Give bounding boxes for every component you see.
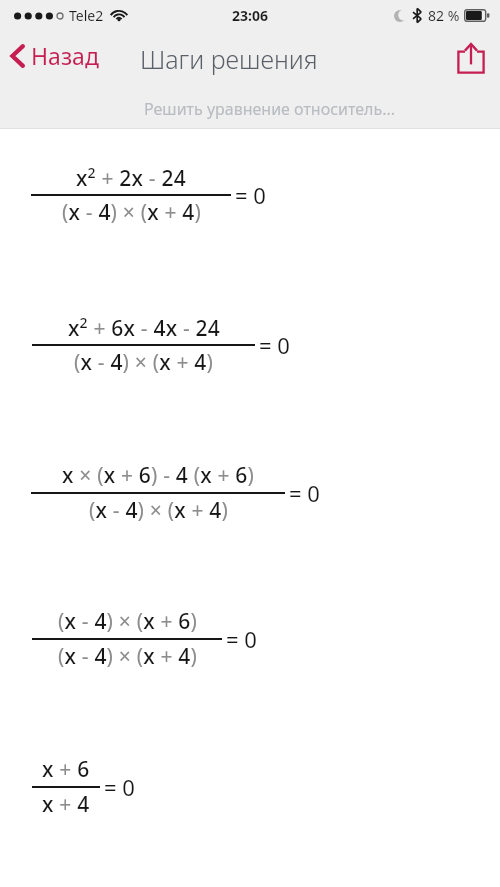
staticText: = 0 — [259, 330, 290, 360]
staticText: x2 + 2x - 24 — [76, 163, 186, 192]
staticText: (x - 4) × (x + 4) — [89, 496, 228, 525]
staticText: x2 + 6x - 4x - 24 — [68, 313, 220, 342]
staticText: x + 6 — [42, 755, 90, 784]
staticText: 82 % — [428, 6, 460, 25]
staticText: Решить уравнение относитель... — [144, 98, 396, 120]
staticText: = 0 — [104, 772, 135, 802]
staticText: x × (x + 6) - 4 (x + 6) — [62, 461, 254, 490]
staticText: (x - 4) × (x + 6) — [58, 607, 197, 636]
staticText: (x - 4) × (x + 4) — [74, 348, 213, 377]
staticText: = 0 — [235, 180, 266, 210]
staticText: x + 4 — [42, 790, 90, 819]
staticText: = 0 — [226, 624, 257, 654]
staticText: = 0 — [289, 478, 320, 508]
staticText: 23:06 — [232, 6, 268, 25]
button[interactable]: Share — [450, 36, 492, 80]
staticText: Назад — [31, 40, 99, 71]
staticText: Шаги решения — [140, 42, 318, 76]
button[interactable]: Назад — [0, 36, 109, 77]
staticText: Tele2 — [69, 6, 104, 25]
staticText: (x - 4) × (x + 4) — [58, 642, 197, 671]
staticText: (x - 4) × (x + 4) — [62, 198, 201, 227]
